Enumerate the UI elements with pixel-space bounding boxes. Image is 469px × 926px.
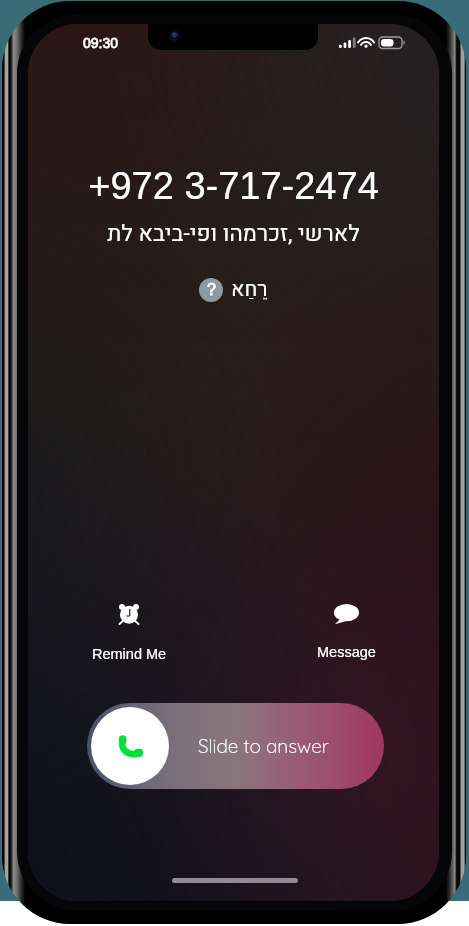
staticText: Slide to answer: [198, 734, 329, 758]
button[interactable]: Slide to answer: [87, 703, 384, 789]
button[interactable]: Remind Me: [41, 603, 217, 662]
staticText: +972 3-717-2474: [28, 165, 439, 207]
staticText: לארשי ,זכרמהו ופי-ביבא לת: [28, 217, 439, 250]
staticText: רֵחַא: [231, 274, 268, 305]
button[interactable]: Message: [258, 601, 434, 660]
staticText: Remind Me: [92, 646, 167, 662]
staticText: ?: [207, 281, 216, 299]
staticText: 09:30: [83, 35, 119, 51]
staticText: Message: [317, 644, 376, 660]
